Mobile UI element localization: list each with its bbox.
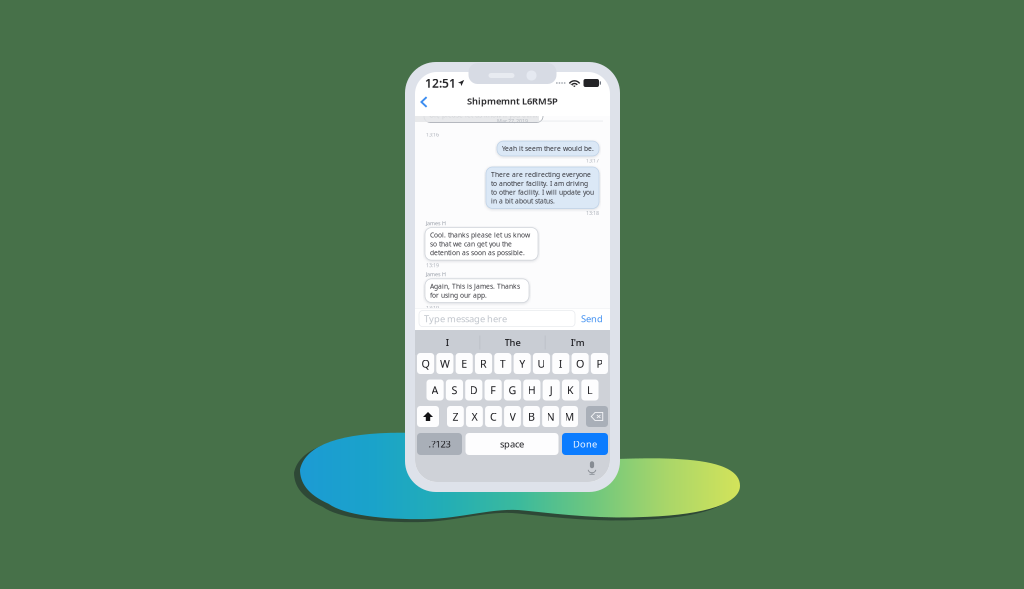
button[interactable]: N	[542, 406, 559, 427]
staticText: J	[550, 383, 553, 397]
button[interactable]: Send	[575, 311, 609, 327]
staticText: Done	[573, 438, 597, 450]
staticText: B	[528, 409, 535, 424]
button[interactable]: I'm	[545, 330, 610, 355]
button[interactable]: Shift	[417, 406, 439, 427]
staticText: Yeah it seem there would be.	[502, 144, 594, 153]
staticText: Send	[581, 312, 603, 325]
button[interactable]: M	[561, 406, 578, 427]
button[interactable]: D	[465, 379, 482, 400]
staticText: X	[471, 409, 477, 424]
button[interactable]: L	[581, 379, 598, 400]
button[interactable]: O	[572, 353, 589, 374]
button[interactable]: Back	[416, 93, 432, 111]
button[interactable]: Delete	[586, 406, 608, 427]
button[interactable]: space	[465, 433, 558, 455]
staticText: R	[480, 356, 487, 371]
button[interactable]: Dictate	[587, 461, 597, 475]
button[interactable]: W	[436, 353, 453, 374]
staticText: T	[500, 356, 506, 371]
button[interactable]: Q	[417, 353, 434, 374]
staticText: 13:18	[586, 209, 599, 216]
staticText: K	[567, 383, 574, 397]
staticText: 12:51	[425, 75, 456, 91]
staticText: I	[559, 356, 563, 371]
button[interactable]: Done	[562, 433, 608, 455]
staticText: I	[446, 336, 449, 349]
button[interactable]: Y	[514, 353, 531, 374]
staticText: Q	[422, 356, 430, 371]
staticText: Mar 27, 2019	[497, 117, 528, 125]
button[interactable]: A	[426, 379, 444, 400]
staticText: Cool. thanks please let us know so that …	[430, 231, 530, 257]
button[interactable]: H	[523, 379, 540, 400]
button[interactable]: Z	[447, 406, 464, 427]
staticText: Shipmemnt L6RM5P	[467, 95, 558, 107]
staticText: The	[504, 336, 520, 349]
button[interactable]: U	[533, 353, 550, 374]
button[interactable]: S	[446, 379, 463, 400]
staticText: G	[508, 383, 516, 397]
staticText: .?123	[428, 438, 450, 450]
staticText: D	[470, 383, 478, 397]
button[interactable]: P	[591, 353, 608, 374]
staticText: P	[596, 356, 602, 371]
staticText: Again, This is James. Thanks for using o…	[430, 282, 520, 299]
button[interactable]: R	[475, 353, 492, 374]
button[interactable]: G	[504, 379, 521, 400]
staticText: I'm	[571, 336, 585, 349]
button[interactable]: J	[543, 379, 560, 400]
staticText: James H	[426, 271, 446, 278]
staticText: W	[440, 356, 450, 371]
staticText: F	[490, 383, 496, 397]
staticText: M	[565, 409, 575, 424]
button[interactable]: The	[480, 330, 545, 355]
button[interactable]: F	[485, 379, 502, 400]
button[interactable]: I	[415, 330, 480, 355]
button[interactable]: C	[485, 406, 502, 427]
button[interactable]: T	[494, 353, 511, 374]
button[interactable]: E	[456, 353, 473, 374]
button[interactable]: V	[504, 406, 521, 427]
staticText: OK, please let us know if you think	[429, 110, 538, 119]
staticText: 13:19	[426, 304, 439, 311]
staticText: 13:19	[426, 262, 439, 269]
button[interactable]: X	[466, 406, 483, 427]
button[interactable]: K	[562, 379, 579, 400]
staticText: V	[509, 409, 515, 424]
staticText: Y	[519, 356, 525, 371]
staticText: N	[547, 409, 555, 424]
staticText: H	[528, 383, 536, 397]
staticText: S	[451, 383, 457, 397]
button[interactable]: B	[523, 406, 540, 427]
staticText: U	[537, 356, 545, 371]
staticText: Z	[452, 409, 458, 424]
staticText: Type message here	[424, 312, 507, 325]
staticText: James H	[426, 219, 446, 227]
staticText: E	[461, 356, 467, 371]
button[interactable]: .?123	[417, 433, 462, 455]
staticText: 13:17	[586, 157, 599, 164]
staticText: O	[576, 356, 584, 371]
staticText: space	[500, 438, 524, 450]
staticText: 13:16	[426, 131, 439, 138]
button[interactable]: I	[552, 353, 569, 374]
staticText: C	[490, 409, 497, 424]
staticText: A	[432, 383, 439, 397]
staticText: There are redirecting everyone to anothe…	[491, 170, 594, 205]
staticText: L	[587, 383, 593, 397]
